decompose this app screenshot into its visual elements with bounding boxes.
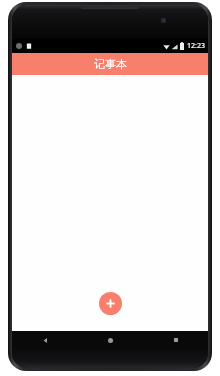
- staticText: 记事本: [94, 57, 127, 71]
- button[interactable]: Back: [12, 331, 78, 349]
- staticText: 12:23: [187, 41, 205, 51]
- button[interactable]: Home: [78, 331, 143, 349]
- button[interactable]: Add note: [99, 292, 122, 315]
- button[interactable]: Recent apps: [143, 331, 208, 349]
